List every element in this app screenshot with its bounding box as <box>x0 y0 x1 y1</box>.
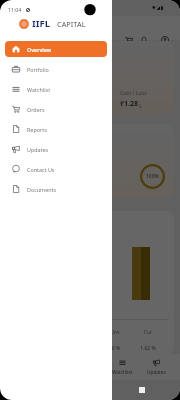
staticText: Orders <box>27 106 45 113</box>
button[interactable]: Overview <box>5 41 107 57</box>
staticText: Contact Us <box>27 166 55 173</box>
staticText: Updates <box>147 369 166 376</box>
staticText: L <box>138 102 143 109</box>
button[interactable]: Contact Us <box>5 161 107 177</box>
button[interactable]: Documents <box>5 181 107 197</box>
staticText: Portfolio <box>27 66 49 73</box>
button[interactable]: Profile <box>161 36 169 44</box>
staticText: Inv <box>101 329 131 336</box>
staticText: 11:04 <box>8 6 22 13</box>
button[interactable]: Portfolio <box>5 61 107 77</box>
staticText: Gain / Loss <box>120 89 147 96</box>
button[interactable]: Watchlist <box>105 354 139 380</box>
button[interactable]: Updates <box>139 354 173 380</box>
staticText: Watchlist <box>112 369 133 376</box>
staticText: Watchlist <box>27 86 51 93</box>
staticText: 0 % <box>101 345 131 352</box>
staticText: IIFL <box>32 17 51 30</box>
staticText: CAPITAL <box>57 19 86 29</box>
staticText: Cur <box>133 329 163 336</box>
button[interactable]: Updates <box>5 141 107 157</box>
staticText: 100% <box>146 173 159 180</box>
button[interactable]: Notifications <box>140 36 148 44</box>
staticText: 1.02 % <box>133 345 163 352</box>
button[interactable]: Watchlist <box>5 81 107 97</box>
button[interactable]: Reports <box>5 121 107 137</box>
staticText: Overview <box>27 46 52 53</box>
staticText: Documents <box>27 186 57 193</box>
button[interactable]: Orders <box>5 101 107 117</box>
button[interactable]: Cart <box>125 36 133 44</box>
staticText: ₹1.28 <box>120 99 138 109</box>
staticText: Reports <box>27 126 47 133</box>
staticText: Updates <box>27 146 49 153</box>
